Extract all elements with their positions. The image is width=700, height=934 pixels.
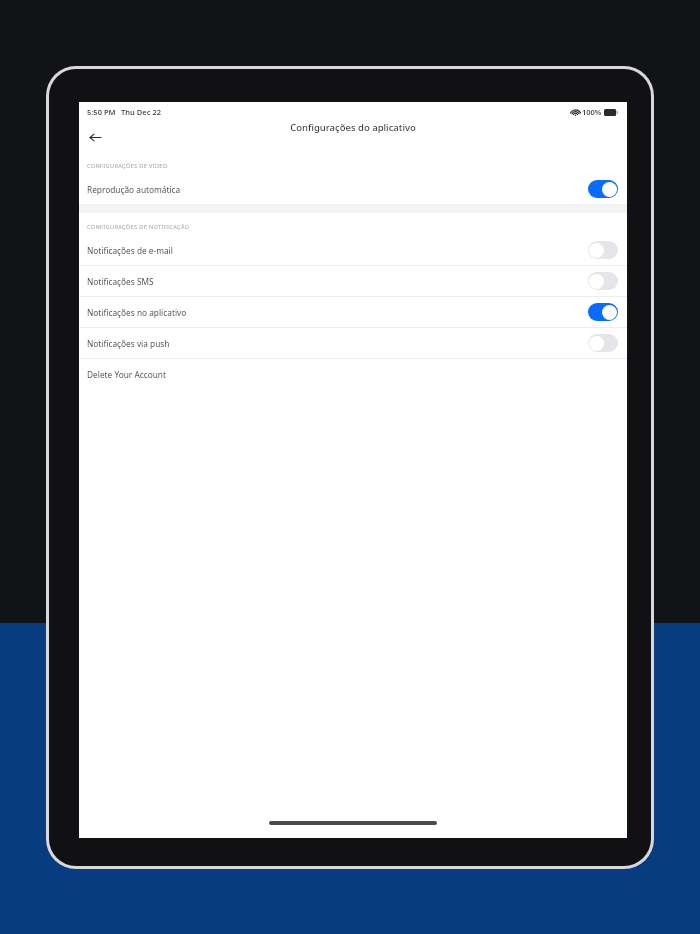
staticText: Configurações do aplicativo — [290, 121, 416, 134]
staticText: CONFIGURAÇÕES DE NOTIFICAÇÃO — [87, 223, 190, 231]
staticText: Notificações de e-mail — [87, 245, 173, 256]
staticText: Notificações no aplicativo — [87, 307, 187, 318]
staticText: Notificações via push — [87, 338, 170, 349]
button[interactable]: Notificações via push — [79, 328, 627, 358]
staticText: Reprodução automática — [87, 184, 181, 195]
staticText: 5:50 PM — [87, 107, 116, 117]
staticText: Delete Your Account — [87, 369, 166, 380]
staticText: Thu Dec 22 — [121, 107, 161, 117]
staticText: CONFIGURAÇÕES DE VÍDEO — [87, 162, 168, 170]
button[interactable]: Notificações SMS — [79, 266, 627, 296]
button[interactable]: Back — [84, 126, 106, 148]
button[interactable]: Notificações no aplicativo — [79, 297, 627, 327]
staticText: Notificações SMS — [87, 276, 154, 287]
button[interactable]: Reprodução automática — [79, 174, 627, 204]
button[interactable]: Delete Your Account — [79, 359, 627, 389]
staticText: 100% — [582, 107, 602, 117]
button[interactable]: Notificações de e-mail — [79, 235, 627, 265]
